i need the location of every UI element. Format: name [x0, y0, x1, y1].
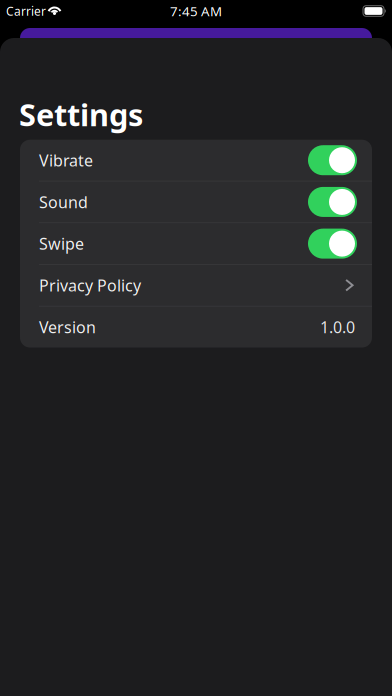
staticText: Version	[39, 316, 96, 338]
staticText: 1.0.0	[320, 316, 355, 338]
staticText: Swipe	[39, 233, 84, 254]
button[interactable]: Privacy Policy	[20, 265, 372, 306]
staticText: Vibrate	[39, 150, 93, 171]
button[interactable]: Sound	[20, 181, 372, 222]
staticText: Carrier	[6, 3, 46, 19]
button[interactable]: Vibrate	[20, 140, 372, 181]
staticText: Privacy Policy	[39, 275, 141, 296]
staticText: Settings	[19, 94, 143, 135]
button[interactable]: Swipe	[20, 223, 372, 264]
staticText: 7:45 AM	[170, 2, 222, 20]
staticText: Sound	[39, 191, 88, 212]
